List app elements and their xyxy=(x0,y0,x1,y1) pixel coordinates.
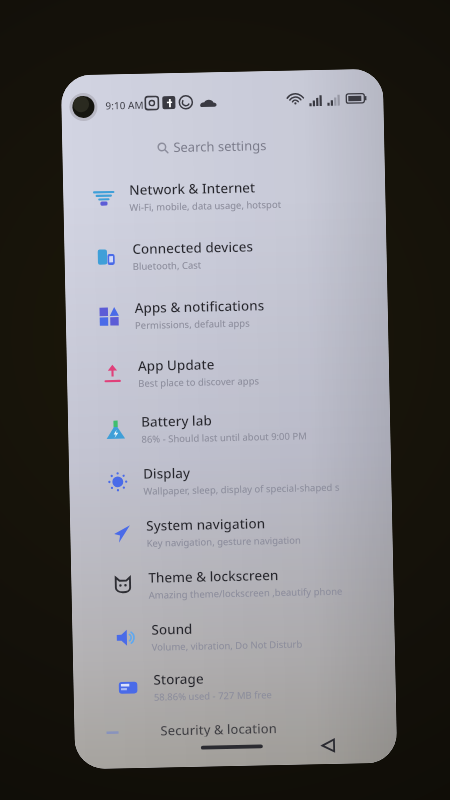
staticText: Permissions, default apps xyxy=(135,316,250,332)
staticText: Sound xyxy=(151,620,193,639)
staticText: App Update xyxy=(138,355,215,375)
staticText: Bluetooth, Cast xyxy=(133,258,202,273)
staticText: Network & Internet xyxy=(129,178,256,199)
staticText: 86% - Should last until about 9:00 PM xyxy=(141,429,307,446)
staticText: Wi-Fi, mobile, data usage, hotspot xyxy=(129,198,282,214)
button[interactable]: Connected devices xyxy=(80,231,379,277)
staticText: Apps & notifications xyxy=(134,296,265,317)
button[interactable]: Home xyxy=(201,739,263,755)
button[interactable]: Battery lab xyxy=(89,404,383,450)
staticText: Display xyxy=(143,464,190,483)
staticText: Key navigation, gesture navigation xyxy=(146,533,302,550)
staticText: Search settings xyxy=(173,136,267,156)
button[interactable]: Apps & notifications xyxy=(82,290,380,336)
staticText: Volume, vibration, Do Not Disturb xyxy=(152,637,303,654)
staticText: Theme & lockscreen xyxy=(148,566,278,587)
staticText: 58.86% used - 727 MB free xyxy=(154,688,273,704)
button[interactable]: Storage xyxy=(101,662,388,708)
button[interactable]: System navigation xyxy=(94,508,385,554)
staticText: Battery lab xyxy=(141,411,212,431)
staticText: Connected devices xyxy=(132,237,254,258)
staticText: Storage xyxy=(153,670,205,689)
button[interactable]: Display xyxy=(91,456,384,502)
button[interactable]: App Update xyxy=(86,348,381,394)
staticText: 9:10 AM xyxy=(105,98,145,112)
staticText: Best place to discover apps xyxy=(138,374,259,390)
button[interactable]: Search settings xyxy=(157,132,297,159)
staticText: Security & location xyxy=(160,719,278,737)
staticText: System navigation xyxy=(146,514,265,535)
staticText: Wallpaper, sleep, display of special-sha… xyxy=(143,481,340,498)
button[interactable]: Sound xyxy=(99,612,387,658)
button[interactable]: Network & Internet xyxy=(77,172,378,218)
button[interactable]: Security & location xyxy=(160,717,381,737)
button[interactable]: Back xyxy=(315,732,341,758)
button[interactable]: Theme & lockscreen xyxy=(96,560,386,606)
staticText: Amazing theme/lockscreen ,beautify phone xyxy=(148,585,343,602)
